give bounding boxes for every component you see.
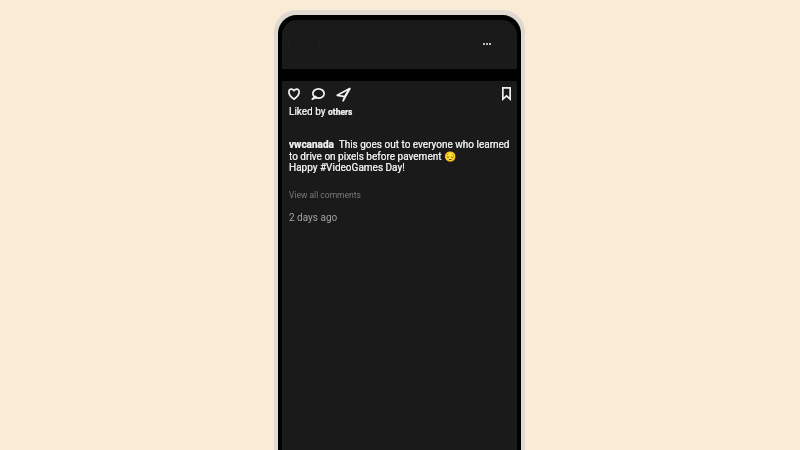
staticText: Liked by others <box>289 106 353 118</box>
button[interactable]: More options <box>476 36 498 52</box>
button[interactable]: View all comments <box>289 190 361 200</box>
staticText: vwcanada This goes out to everyone who l… <box>289 139 517 173</box>
button[interactable]: Comment <box>312 88 325 100</box>
staticText: 2 days ago <box>289 212 338 224</box>
button[interactable]: Like <box>288 88 300 100</box>
button[interactable]: Save <box>502 87 511 100</box>
button[interactable]: Liked by others <box>289 106 353 118</box>
staticText: View all comments <box>289 190 361 200</box>
button[interactable]: Share <box>337 88 350 101</box>
